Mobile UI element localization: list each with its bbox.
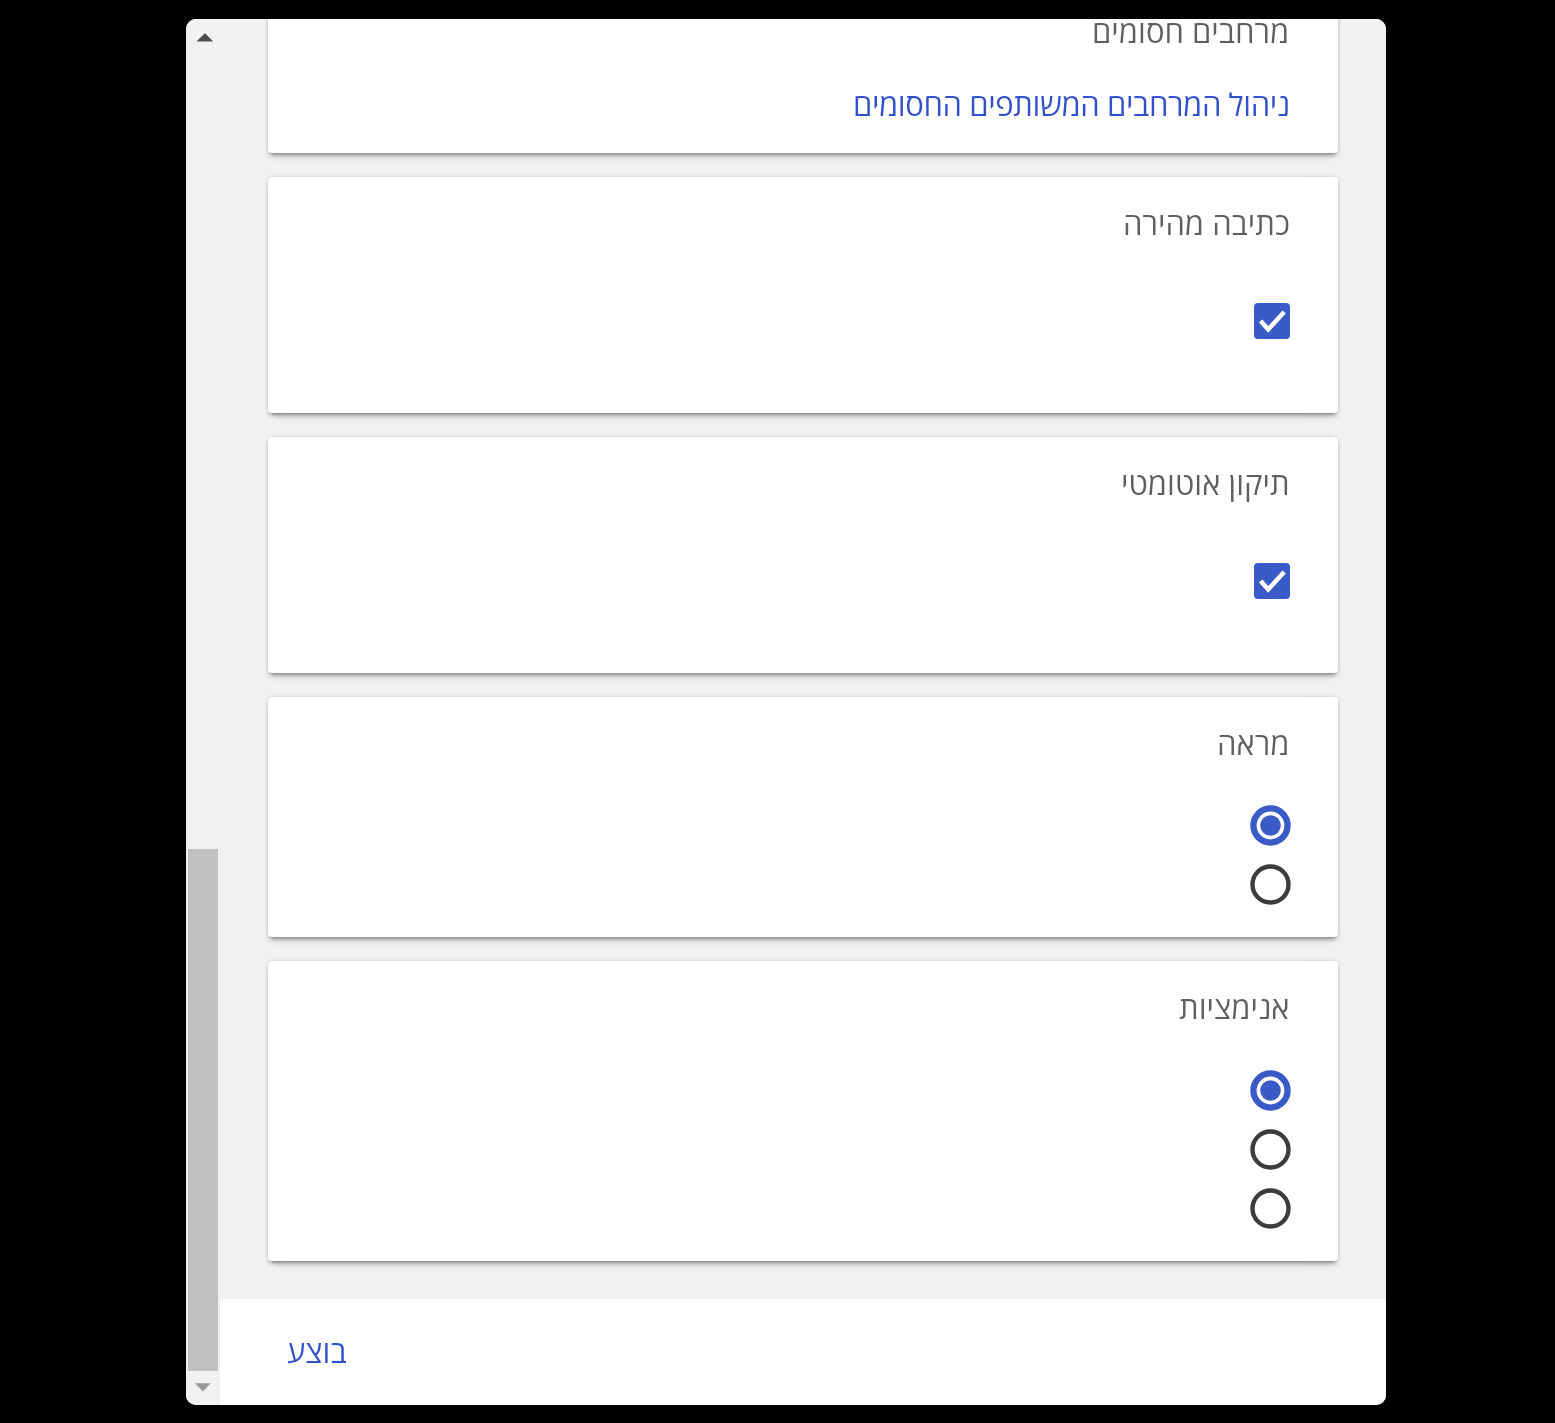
button[interactable]: Scroll down	[186, 1376, 215, 1400]
button[interactable]: Checkbox	[1254, 563, 1290, 599]
staticText: אנימציות	[1179, 986, 1290, 1028]
staticText: כתיבה מהירה	[1123, 202, 1290, 244]
button[interactable]: Scroll up	[188, 25, 217, 49]
button[interactable]: Option	[1250, 1188, 1291, 1229]
staticText: מרחבים חסומים	[1092, 19, 1290, 52]
staticText: ניהול המרחבים המשותפים החסומים	[853, 83, 1290, 125]
button[interactable]: בוצע	[271, 1320, 363, 1382]
button[interactable]: Selected option	[1250, 805, 1291, 846]
button[interactable]: מרחבים חסומים	[268, 19, 1338, 153]
button[interactable]: Selected option	[1250, 1070, 1291, 1111]
button[interactable]: תיקון אוטומטי	[268, 437, 1338, 673]
button[interactable]: כתיבה מהירה	[268, 177, 1338, 413]
button[interactable]: אנימציות	[268, 961, 1338, 1261]
button[interactable]: מראה	[268, 697, 1338, 937]
staticText: מראה	[1217, 722, 1290, 764]
staticText: תיקון אוטומטי	[1121, 462, 1290, 504]
staticText: בוצע	[287, 1330, 347, 1372]
button[interactable]: Checkbox	[1254, 303, 1290, 339]
button[interactable]: Option	[1250, 864, 1291, 905]
button[interactable]: ניהול המרחבים המשותפים החסומים	[853, 83, 1290, 125]
button[interactable]: Option	[1250, 1129, 1291, 1170]
